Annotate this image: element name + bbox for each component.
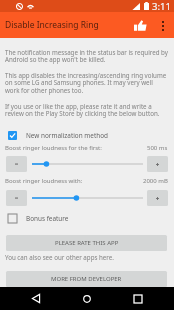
button[interactable]: Bonus feature — [0, 211, 174, 225]
staticText: 3:11 — [152, 0, 171, 12]
button[interactable]: Increase — [147, 156, 168, 172]
staticText: New normalization method — [26, 131, 108, 140]
staticText: PLEASE RATE THIS APP — [55, 239, 119, 247]
staticText: MORE FROM DEVELOPER — [51, 275, 122, 283]
button[interactable]: Decrease — [6, 190, 27, 206]
staticText: If you use or like the app, please rate … — [5, 102, 168, 118]
staticText: Disable Increasing Ring — [5, 19, 99, 31]
button[interactable]: Home — [72, 287, 102, 310]
staticText: The notification message in the status b… — [5, 48, 168, 64]
staticText: 500 ms — [147, 144, 168, 152]
button[interactable]: Increase — [147, 190, 168, 206]
staticText: Bonus feature — [26, 214, 69, 223]
button[interactable]: PLEASE RATE THIS APP — [6, 235, 167, 251]
staticText: 2000 mB — [143, 177, 168, 185]
button[interactable]: Decrease — [6, 156, 27, 172]
button[interactable]: MORE FROM DEVELOPER — [6, 271, 167, 287]
button[interactable]: Rate this app — [129, 12, 151, 38]
button[interactable]: New normalization method — [0, 128, 174, 142]
staticText: You can also see our other apps here. — [5, 253, 114, 261]
button[interactable] — [32, 156, 143, 172]
button[interactable]: More options — [151, 12, 174, 38]
button[interactable] — [32, 190, 143, 206]
button[interactable]: Recent apps — [123, 287, 153, 310]
staticText: Boost ringer loudness with: — [5, 177, 83, 185]
staticText: This app disables the increasing/ascendi… — [5, 71, 168, 95]
staticText: Boost ringer loudness for the first: — [5, 144, 102, 152]
button[interactable]: Back — [21, 287, 51, 310]
